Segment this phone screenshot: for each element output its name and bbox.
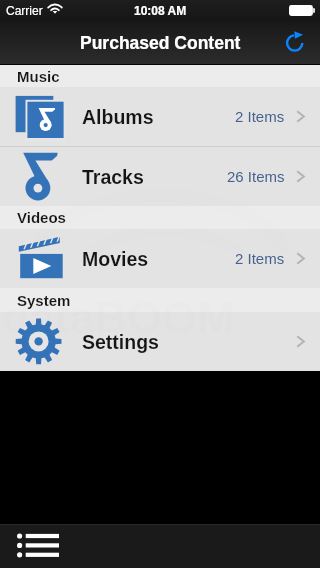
- button[interactable]: Refresh: [278, 25, 314, 61]
- button[interactable]: Settings: [0, 312, 320, 371]
- staticText: Settings: [82, 331, 159, 353]
- button[interactable]: Tracks: [0, 147, 320, 206]
- staticText: System: [17, 292, 71, 309]
- button[interactable]: List: [6, 525, 70, 565]
- staticText: Movies: [82, 248, 149, 270]
- staticText: 26 Items: [227, 168, 285, 185]
- staticText: Videos: [17, 209, 66, 226]
- staticText: dataBOOM: [2, 292, 235, 342]
- staticText: 2 Items: [235, 108, 285, 125]
- staticText: Carrier: [6, 4, 43, 17]
- button[interactable]: Movies: [0, 229, 320, 288]
- staticText: Purchased Content: [80, 33, 241, 53]
- staticText: Music: [17, 68, 60, 85]
- staticText: 10:08 AM: [134, 4, 187, 17]
- staticText: Tracks: [82, 166, 144, 188]
- staticText: 2 Items: [235, 250, 285, 267]
- button[interactable]: Albums: [0, 87, 320, 146]
- staticText: Albums: [82, 106, 154, 128]
